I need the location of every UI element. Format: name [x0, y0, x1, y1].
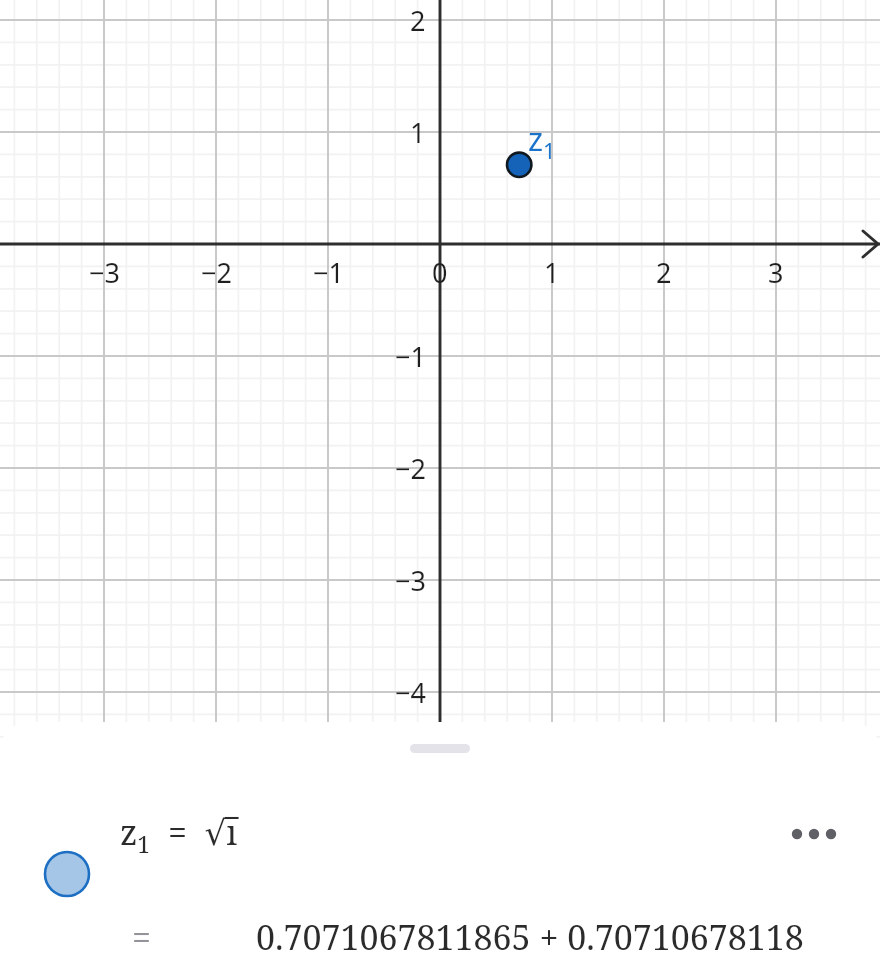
staticText: −2 [201, 254, 232, 290]
staticText: −1 [395, 338, 426, 375]
button[interactable]: z1 = √i̅ [120, 800, 760, 868]
staticText: 2 [656, 254, 672, 290]
staticText: 0 [432, 254, 448, 290]
staticText: 1 [410, 114, 426, 151]
button[interactable]: More options [772, 800, 856, 868]
staticText: −3 [89, 254, 120, 290]
button[interactable]: Toggle visibility of z1 [38, 845, 96, 903]
staticText: 3 [768, 254, 784, 290]
staticText: 2 [410, 2, 426, 39]
staticText: 1 [544, 254, 560, 290]
staticText: −4 [395, 674, 426, 711]
staticText: −3 [395, 562, 426, 599]
staticText: z1 [528, 117, 556, 165]
button[interactable]: = [132, 908, 872, 954]
staticText: −2 [395, 450, 426, 487]
staticText: z1 = √i̅ [120, 809, 238, 859]
staticText: = [132, 914, 152, 954]
staticText: −1 [313, 254, 344, 290]
staticText: 0.7071067811865 + 0.70710678118 [256, 914, 804, 954]
